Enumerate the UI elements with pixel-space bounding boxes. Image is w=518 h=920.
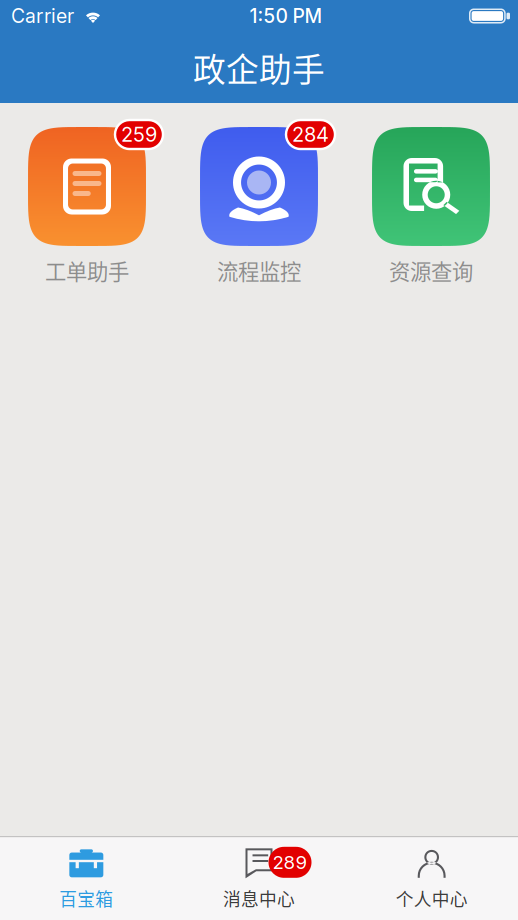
staticText: Carrier [11,4,74,28]
staticText: 流程监控 [217,255,301,286]
staticText: 259 [121,122,157,147]
button[interactable]: 259 [1,127,173,286]
button[interactable]: 资源查询 [345,127,517,286]
staticText: 资源查询 [389,255,473,286]
staticText: 政企助手 [193,44,325,91]
button[interactable]: 284 [173,127,345,286]
staticText: 百宝箱 [59,885,113,911]
button[interactable]: 289 [173,837,345,920]
button[interactable]: 百宝箱 [0,837,173,920]
staticText: 289 [272,851,307,874]
button[interactable]: 个人中心 [345,837,518,920]
staticText: 消息中心 [223,885,295,911]
staticText: 284 [292,122,329,147]
staticText: 工单助手 [45,255,129,286]
staticText: 1:50 PM [249,4,322,28]
staticText: 个人中心 [396,885,468,911]
